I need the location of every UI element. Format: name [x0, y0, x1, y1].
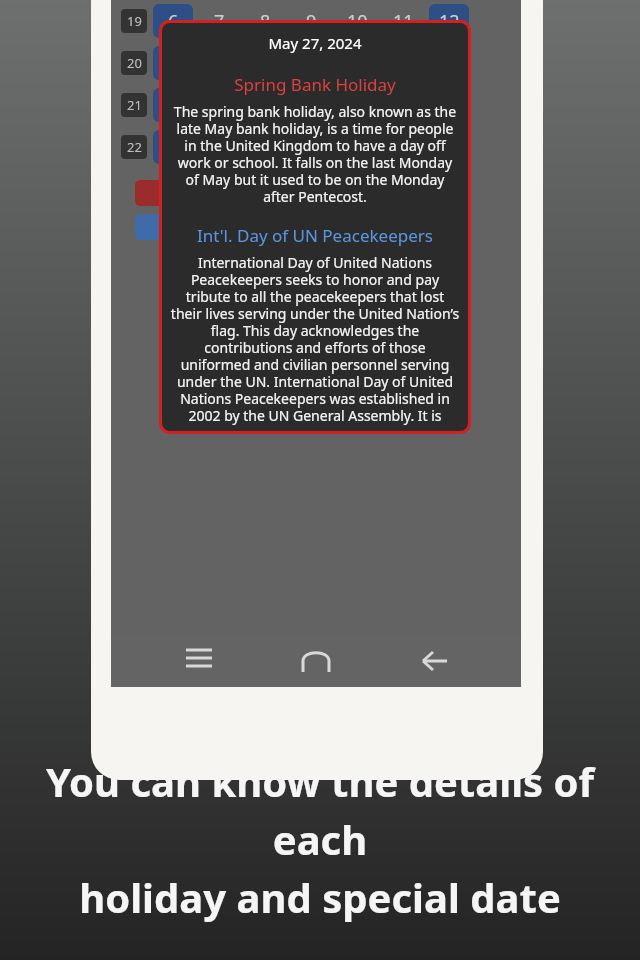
- staticText: Spring Bank Holiday: [170, 73, 460, 96]
- staticText: 29: [255, 135, 276, 160]
- staticText: 28: [209, 135, 230, 160]
- staticText: 8: [260, 9, 271, 34]
- staticText: 7: [214, 9, 225, 34]
- staticText: 20: [127, 54, 142, 72]
- staticText: Int'l. Day of UN Peacekeepers: [170, 224, 460, 247]
- staticText: 30: [301, 135, 322, 160]
- staticText: 24: [347, 93, 368, 118]
- staticText: 12: [439, 9, 460, 34]
- staticText: 22: [127, 138, 142, 156]
- staticText: The spring bank holiday, also known as t…: [170, 102, 460, 206]
- staticText: 21: [209, 93, 230, 118]
- button[interactable]: Back: [404, 635, 464, 687]
- staticText: 2: [444, 135, 455, 160]
- staticText: 9: [306, 9, 317, 34]
- staticText: 23: [301, 93, 322, 118]
- staticText: 6: [168, 9, 179, 34]
- button[interactable]: Recents: [169, 635, 229, 687]
- staticText: 10: [347, 9, 368, 34]
- staticText: May 27, 2024: [170, 33, 460, 53]
- staticText: 20: [163, 93, 184, 118]
- staticText: 21: [127, 96, 142, 114]
- staticText: 22: [255, 93, 276, 118]
- staticText: 31: [347, 135, 368, 160]
- staticText: 19: [127, 12, 142, 30]
- staticText: 26: [439, 93, 460, 118]
- button[interactable]: May 27, 2024: [162, 23, 468, 431]
- staticText: You can know the details of each holiday…: [0, 754, 640, 924]
- staticText: 1: [398, 135, 409, 160]
- button[interactable]: Home: [286, 635, 346, 687]
- staticText: 11: [393, 9, 414, 34]
- staticText: International Day of United Nations Peac…: [170, 253, 460, 425]
- staticText: 25: [393, 93, 414, 118]
